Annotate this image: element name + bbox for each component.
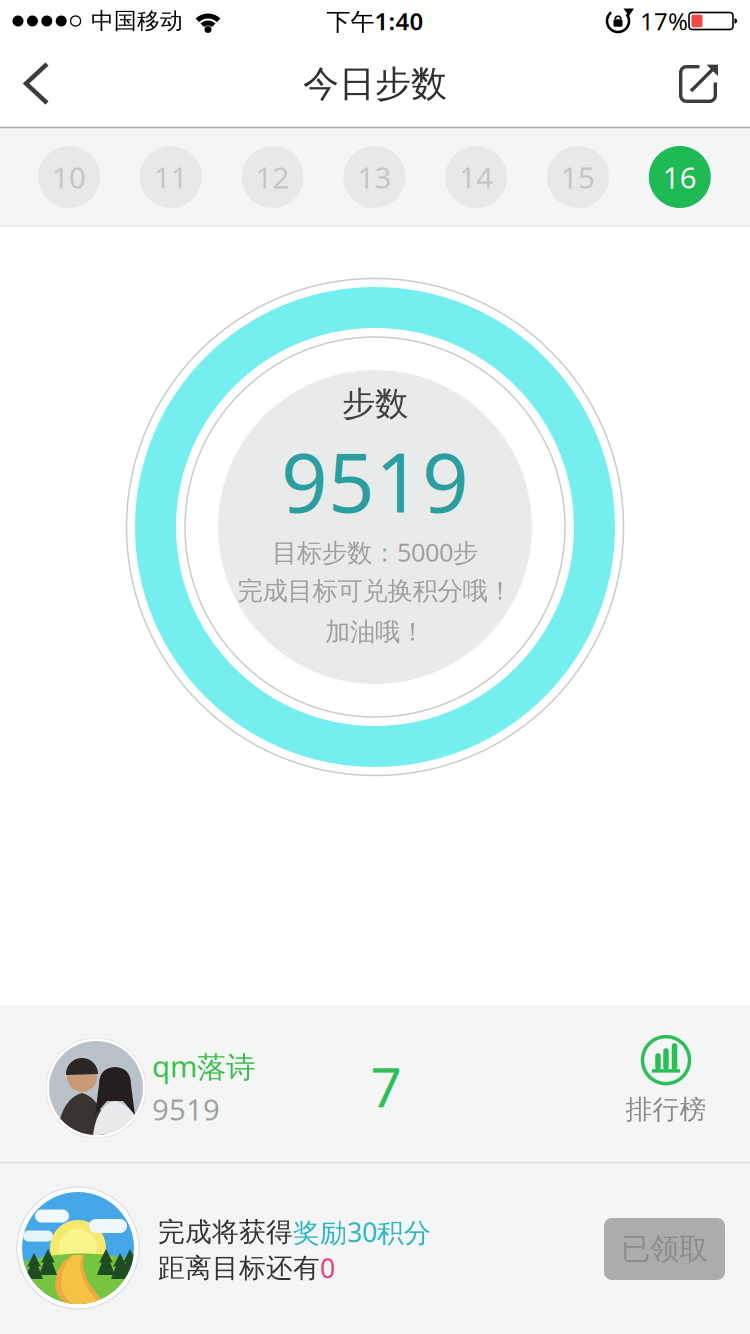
staticText: 步数	[342, 383, 408, 424]
button[interactable]: 已领取	[604, 1218, 725, 1280]
staticText: 14	[459, 157, 493, 196]
staticText: 0	[320, 1250, 335, 1286]
staticText: 距离目标还有	[158, 1252, 320, 1284]
staticText: 11	[154, 157, 188, 196]
staticText: qm落诗	[152, 1046, 255, 1085]
staticText: 9519	[152, 1089, 220, 1128]
staticText: 10	[52, 157, 86, 196]
staticText: 16	[663, 157, 697, 196]
button[interactable]: 10	[38, 146, 100, 208]
staticText: 7	[370, 1050, 401, 1122]
staticText: 完成将获得	[158, 1216, 293, 1248]
staticText: 15	[561, 157, 595, 196]
button[interactable]: 12	[242, 146, 304, 208]
staticText: 奖励30积分	[293, 1214, 431, 1250]
staticText: 17%	[640, 5, 688, 37]
button[interactable]: Share	[676, 62, 719, 105]
staticText: 完成目标可兑换积分哦！	[237, 575, 512, 606]
staticText: 目标步数：5000步	[272, 535, 478, 569]
staticText: 下午1:40	[326, 5, 423, 37]
staticText: 今日步数	[303, 62, 447, 106]
button[interactable]: 13	[343, 146, 405, 208]
staticText: 12	[256, 157, 290, 196]
staticText: 中国移动	[91, 7, 183, 35]
button[interactable]: 11	[140, 146, 202, 208]
button[interactable]: 16	[649, 146, 711, 208]
staticText: 13	[357, 157, 391, 196]
button[interactable]: 15	[547, 146, 609, 208]
staticText: 9519	[281, 427, 469, 535]
staticText: 已领取	[621, 1231, 708, 1267]
button[interactable]: Back	[4, 54, 60, 114]
staticText: 加油哦！	[325, 616, 425, 647]
staticText: 排行榜	[625, 1093, 706, 1126]
button[interactable]: 14	[445, 146, 507, 208]
button[interactable]: 排行榜	[625, 1036, 706, 1126]
